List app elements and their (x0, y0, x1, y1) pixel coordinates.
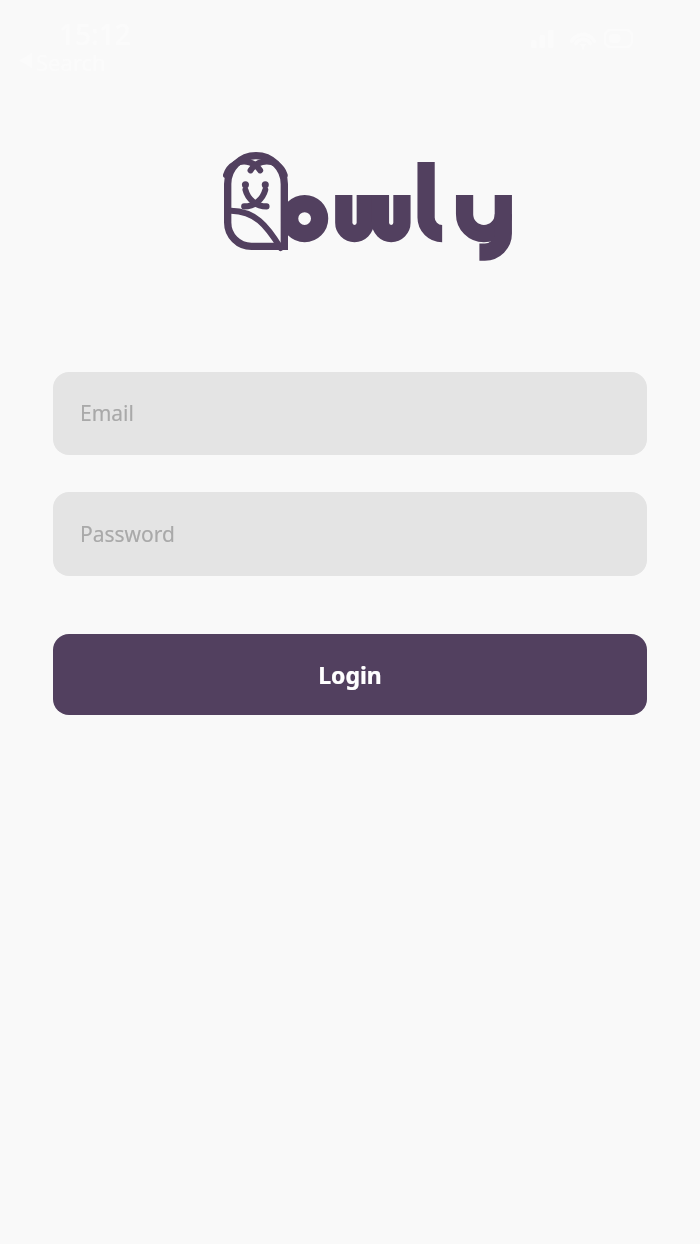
staticText: Password (80, 520, 175, 549)
button[interactable]: Password (53, 492, 647, 576)
staticText: Login (318, 659, 382, 690)
staticText: Email (80, 399, 134, 428)
button[interactable]: Login (53, 634, 647, 715)
button[interactable]: Email (53, 372, 647, 455)
other: Owly logo (224, 152, 288, 250)
